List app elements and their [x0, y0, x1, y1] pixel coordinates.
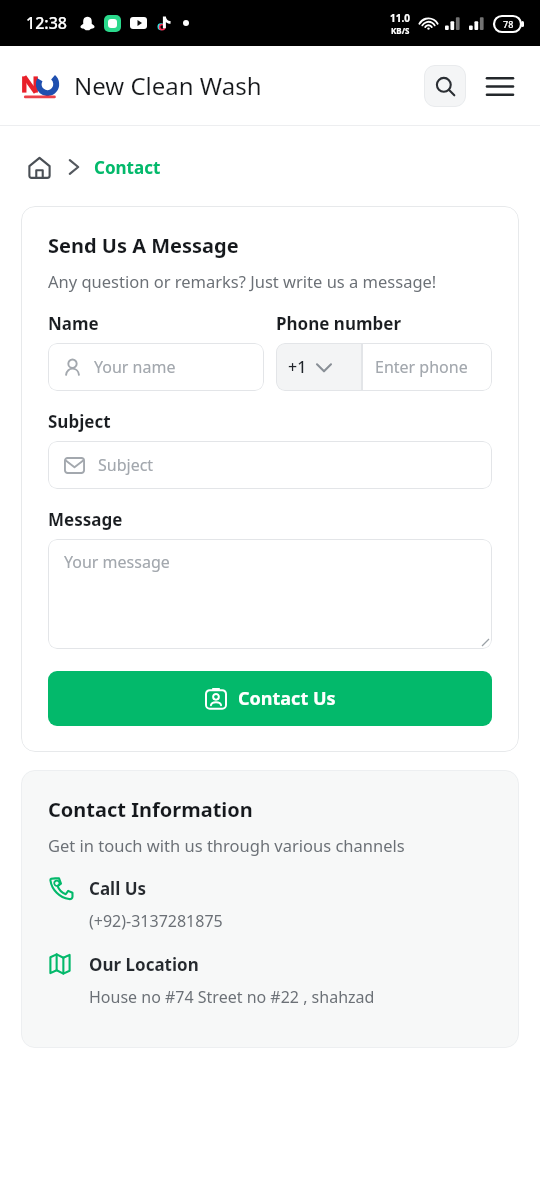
staticText: Subject [48, 410, 111, 433]
staticText: 78 [503, 18, 514, 30]
button[interactable]: Home [24, 152, 54, 182]
button[interactable]: Menu [482, 68, 518, 104]
staticText: House no #74 Street no #22 , shahzad [89, 986, 375, 1008]
staticText: New Clean Wash [74, 69, 262, 102]
staticText: KB/S [391, 25, 410, 36]
staticText: 12:38 [26, 12, 67, 34]
button[interactable]: Our Location [48, 952, 492, 976]
button[interactable]: Call Us [48, 876, 492, 900]
button[interactable]: Enter phone [362, 343, 492, 391]
button[interactable]: +1 [276, 343, 362, 391]
staticText: Send Us A Message [48, 232, 239, 259]
staticText: Enter phone [375, 356, 468, 378]
staticText: Your name [94, 356, 176, 378]
staticText: Phone number [276, 312, 402, 335]
staticText: 11.0 [390, 11, 410, 25]
staticText: Subject [98, 454, 154, 476]
staticText: Message [48, 508, 123, 531]
staticText: Contact Information [48, 796, 253, 823]
staticText: +1 [288, 356, 307, 378]
staticText: Get in touch with us through various cha… [48, 834, 405, 856]
staticText: Our Location [89, 953, 199, 976]
staticText: Call Us [89, 877, 147, 900]
button[interactable]: Your name [48, 343, 264, 391]
staticText: (+92)-3137281875 [89, 910, 223, 932]
staticText: Any question or remarks? Just write us a… [48, 270, 437, 292]
staticText: Contact Us [238, 686, 336, 711]
button[interactable]: Subject [48, 441, 492, 489]
button[interactable]: Contact Us [48, 671, 492, 726]
button[interactable]: Your message [48, 539, 492, 649]
staticText: Your message [64, 551, 170, 573]
button[interactable]: Search [424, 65, 466, 107]
button[interactable]: Contact [94, 156, 161, 179]
staticText: Name [48, 312, 99, 335]
